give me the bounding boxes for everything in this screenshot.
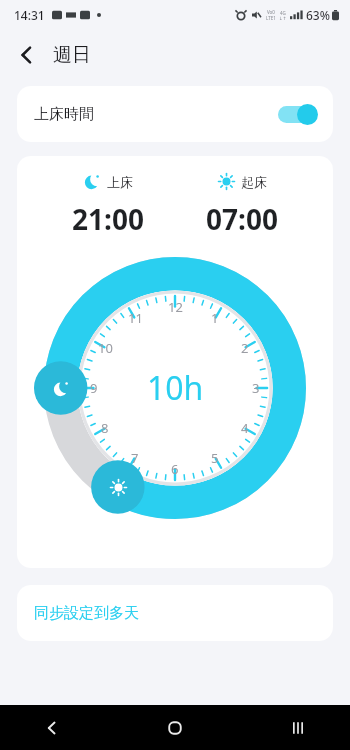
staticText: Vo0 [267, 9, 275, 15]
staticText: 2 [241, 339, 249, 357]
button[interactable]: 同步設定到多天 [17, 585, 333, 641]
staticText: 8 [101, 419, 109, 437]
staticText: 10 [98, 339, 113, 357]
button[interactable]: 21:00 [51, 200, 165, 238]
staticText: 4G [280, 10, 286, 16]
staticText: 6 [171, 460, 179, 478]
button[interactable]: Recents [276, 706, 320, 750]
staticText: 12 [168, 298, 183, 316]
staticText: 63% [306, 7, 330, 23]
staticText: 1 [211, 309, 219, 327]
staticText: 7 [131, 449, 139, 467]
staticText: 9 [90, 379, 98, 397]
button[interactable]: Bedtime handle [34, 361, 88, 415]
button[interactable]: Wake up handle [91, 460, 145, 514]
staticText: ↓↑ [279, 16, 287, 21]
staticText: 5 [211, 449, 219, 467]
staticText: 上床時間 [34, 105, 94, 124]
staticText: 週日 [53, 43, 91, 67]
staticText: 21:00 [72, 200, 144, 238]
button[interactable]: Back [30, 706, 74, 750]
staticText: 07:00 [206, 200, 278, 238]
button[interactable]: Home [153, 706, 197, 750]
button[interactable]: 07:00 [185, 200, 299, 238]
button[interactable]: Back [6, 34, 48, 76]
staticText: 起床 [241, 174, 267, 190]
staticText: LTE1 [266, 15, 276, 21]
staticText: 同步設定到多天 [34, 604, 139, 623]
staticText: 3 [252, 379, 260, 397]
staticText: 14:31 [14, 7, 45, 23]
button[interactable]: 上床時間 [17, 86, 333, 142]
staticText: 上床 [107, 174, 133, 190]
staticText: 4 [241, 419, 249, 437]
staticText: 10h [147, 366, 204, 410]
staticText: 11 [128, 309, 143, 327]
